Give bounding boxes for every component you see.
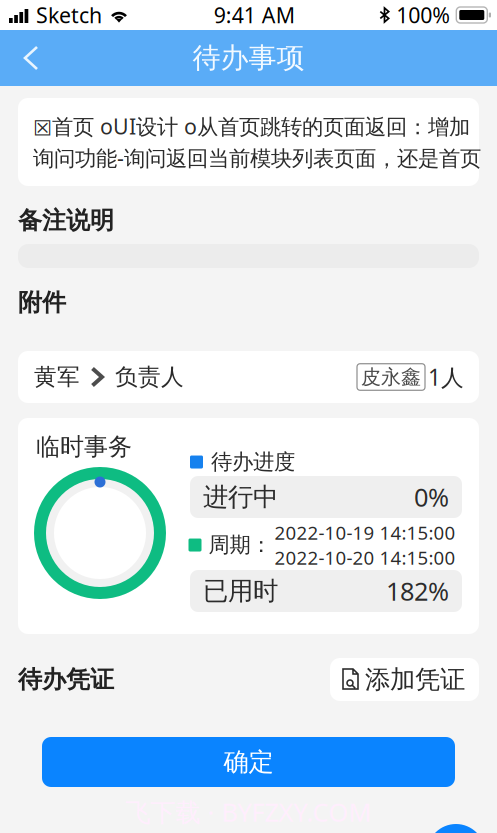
button[interactable]: 确定 xyxy=(42,737,455,787)
staticText: 2022-10-20 14:15:00 xyxy=(274,545,455,570)
staticText: 9:41 AM xyxy=(214,1,295,29)
staticText: 100% xyxy=(396,1,450,29)
staticText: 添加凭证 xyxy=(365,664,465,695)
staticText: 182% xyxy=(386,574,449,608)
staticText: 负责人 xyxy=(115,363,184,391)
staticText: 2022-10-19 14:15:00 xyxy=(274,520,455,545)
staticText: 已用时 xyxy=(203,575,278,606)
button[interactable]: 黄军 xyxy=(18,351,479,403)
staticText: 皮永鑫 xyxy=(361,365,421,389)
staticText: 待办事项 xyxy=(192,41,304,75)
staticText: 进行中 xyxy=(203,481,278,512)
button[interactable]: Messages xyxy=(427,824,485,833)
button[interactable]: 添加凭证 xyxy=(330,658,479,701)
staticText: ☒首页 oUI设计 o从首页跳转的页面返回：增加 xyxy=(33,112,470,140)
staticText: 询问功能-询问返回当前模块列表页面，还是首页 xyxy=(33,143,481,172)
staticText: 周期： xyxy=(208,532,271,558)
staticText: 飞下载 · BYFZXY.COM xyxy=(125,795,371,829)
staticText: 0% xyxy=(414,480,449,514)
staticText: 待办进度 xyxy=(211,449,295,475)
staticText: 黄军 xyxy=(34,363,80,391)
staticText: 附件 xyxy=(18,288,66,317)
staticText: 1人 xyxy=(428,362,464,392)
staticText: 待办凭证 xyxy=(18,665,114,694)
staticText: Sketch xyxy=(36,1,102,29)
staticText: 临时事务 xyxy=(36,432,132,461)
staticText: 确定 xyxy=(223,746,273,777)
staticText: 备注说明 xyxy=(18,206,114,235)
button[interactable]: Back xyxy=(0,30,64,86)
